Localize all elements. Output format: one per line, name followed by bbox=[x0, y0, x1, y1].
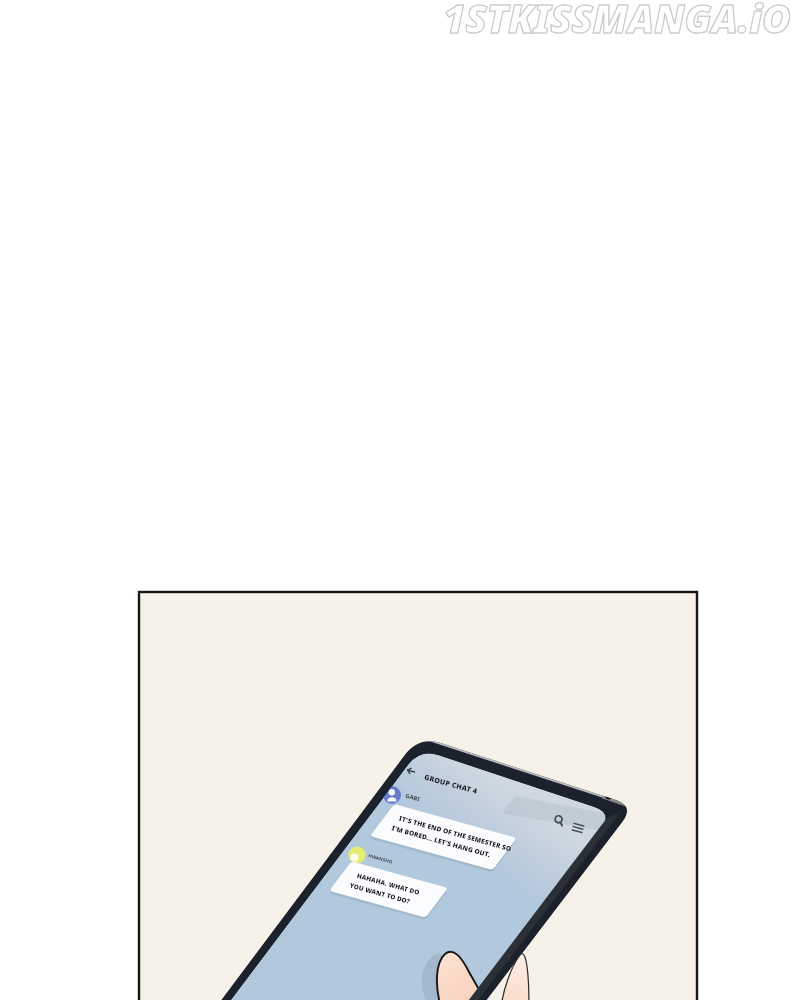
button[interactable]: Comic page: group chat on a phone bbox=[0, 0, 800, 1000]
